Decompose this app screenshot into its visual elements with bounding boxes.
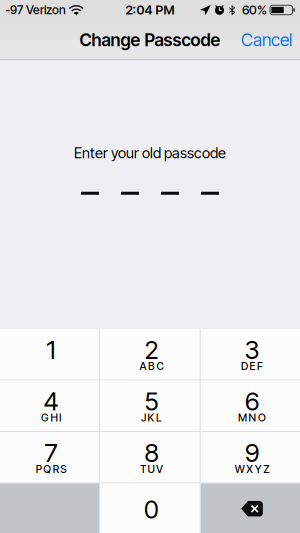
button[interactable]: 5 <box>100 380 200 431</box>
staticText: 5 <box>144 386 158 417</box>
staticText: Change Passcode <box>79 29 220 50</box>
staticText: 60% <box>242 2 267 18</box>
button[interactable]: 1 <box>0 329 99 379</box>
button[interactable]: 8 <box>100 432 200 482</box>
button[interactable]: 3 <box>201 329 300 379</box>
staticText: Cancel <box>241 29 292 50</box>
staticText: TUV <box>140 463 163 475</box>
staticText: 7 <box>44 437 57 468</box>
staticText: 2:04 PM <box>125 2 174 18</box>
button[interactable]: 6 <box>201 380 300 431</box>
staticText: 8 <box>144 437 158 468</box>
staticText: DEF <box>241 360 263 372</box>
staticText: ABC <box>139 360 163 372</box>
button[interactable]: Delete <box>201 483 300 533</box>
staticText: WXYZ <box>235 463 269 475</box>
staticText: 2 <box>144 334 158 365</box>
button[interactable]: 9 <box>201 432 300 482</box>
button[interactable]: 7 <box>0 432 99 482</box>
staticText: GHI <box>41 411 61 424</box>
staticText: 1 <box>46 334 55 365</box>
staticText: 0 <box>144 494 159 525</box>
staticText: 6 <box>245 386 259 417</box>
staticText: -97 Verizon <box>5 3 66 17</box>
button[interactable]: 2 <box>100 329 200 379</box>
staticText: 4 <box>43 386 58 417</box>
staticText: MNO <box>238 411 266 424</box>
staticText: Enter your old passcode <box>74 144 226 162</box>
staticText: 3 <box>244 334 259 365</box>
staticText: 9 <box>245 437 259 468</box>
button[interactable]: 4 <box>0 380 99 431</box>
button[interactable]: Cancel <box>233 18 300 61</box>
staticText: PQRS <box>36 463 66 475</box>
staticText: JKL <box>141 411 162 424</box>
button[interactable]: 0 <box>100 483 200 533</box>
